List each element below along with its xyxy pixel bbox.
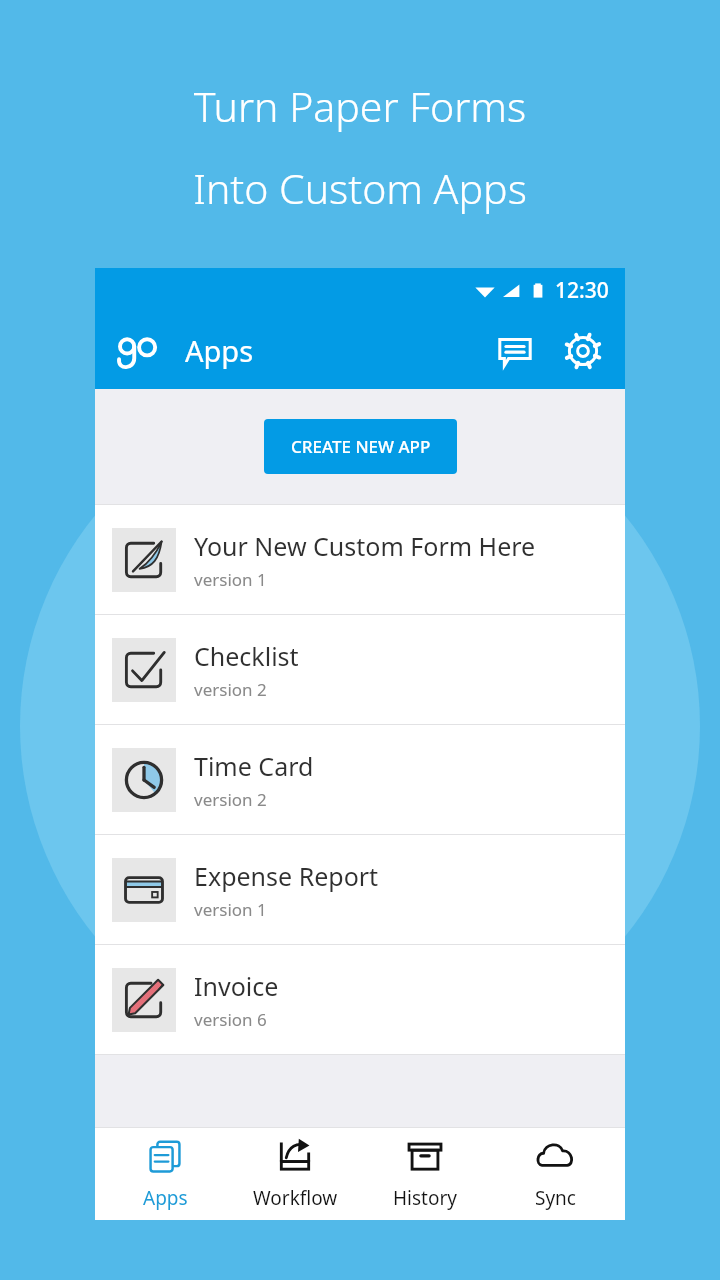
staticText: Checklist bbox=[194, 639, 299, 673]
staticText: Into Custom Apps bbox=[0, 160, 720, 216]
button[interactable]: Your New Custom Form Here bbox=[95, 505, 625, 614]
button[interactable]: Apps bbox=[105, 1128, 225, 1220]
button[interactable]: Workflow bbox=[235, 1128, 355, 1220]
button[interactable]: Expense Report bbox=[95, 835, 625, 944]
staticText: 12:30 bbox=[555, 276, 609, 305]
button[interactable]: Time Card bbox=[95, 725, 625, 834]
staticText: Your New Custom Form Here bbox=[194, 529, 536, 563]
staticText: Time Card bbox=[194, 749, 314, 783]
staticText: Turn Paper Forms bbox=[0, 78, 720, 134]
staticText: version 6 bbox=[194, 1008, 267, 1031]
other: GoCanvas logo bbox=[111, 325, 163, 377]
staticText: Sync bbox=[535, 1185, 576, 1211]
staticText: version 1 bbox=[194, 568, 267, 591]
button[interactable]: Invoice bbox=[95, 945, 625, 1054]
staticText: version 2 bbox=[194, 788, 267, 811]
staticText: CREATE NEW APP bbox=[291, 435, 431, 458]
button[interactable]: Settings bbox=[557, 325, 609, 377]
staticText: Apps bbox=[185, 331, 254, 370]
button[interactable]: CREATE NEW APP bbox=[264, 419, 457, 474]
staticText: Invoice bbox=[194, 969, 279, 1003]
button[interactable]: Checklist bbox=[95, 615, 625, 724]
staticText: Apps bbox=[143, 1185, 188, 1211]
staticText: Expense Report bbox=[194, 859, 379, 893]
button[interactable]: History bbox=[365, 1128, 485, 1220]
button[interactable]: Messages bbox=[489, 325, 541, 377]
staticText: version 1 bbox=[194, 898, 267, 921]
staticText: version 2 bbox=[194, 678, 267, 701]
staticText: Workflow bbox=[253, 1185, 338, 1211]
button[interactable]: Sync bbox=[495, 1128, 615, 1220]
staticText: History bbox=[393, 1185, 457, 1211]
